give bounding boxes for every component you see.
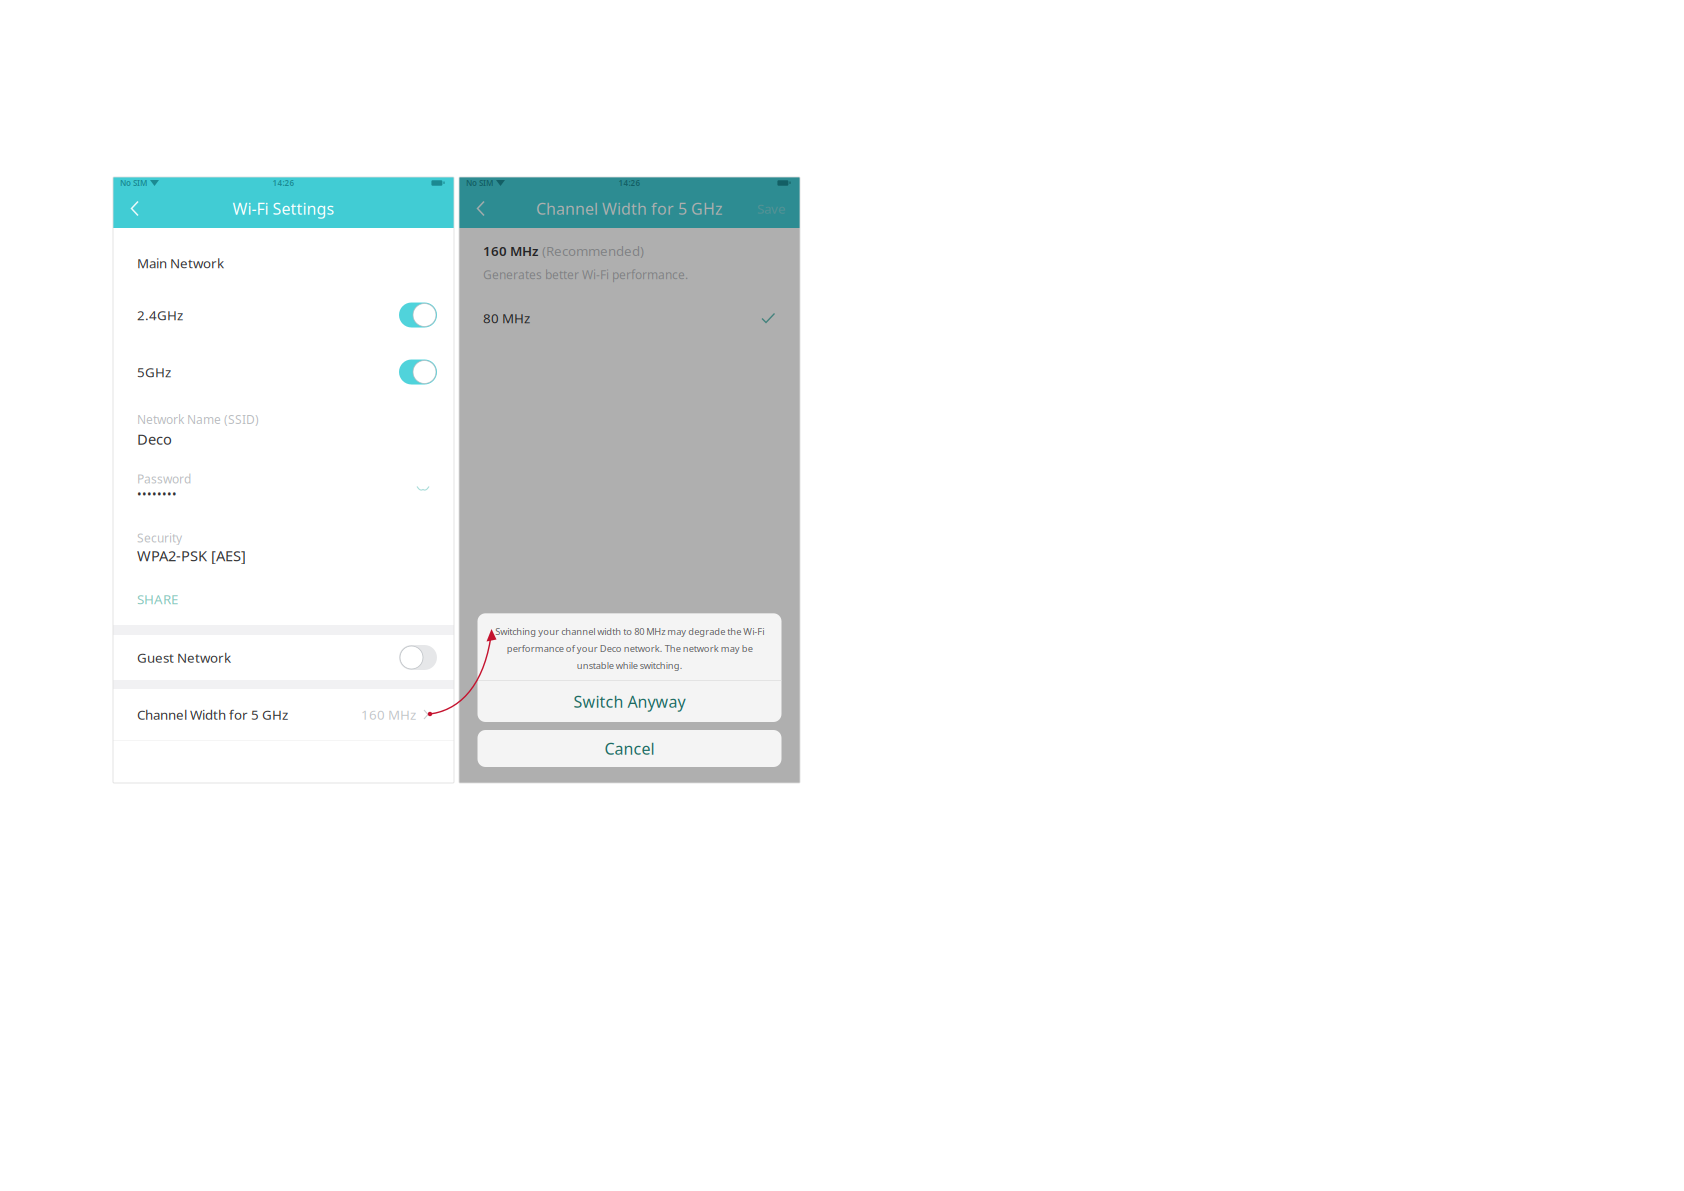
staticText: Network Name (SSID) <box>137 411 259 427</box>
staticText: Cancel <box>604 738 654 759</box>
button[interactable]: Channel Width for 5 GHz <box>113 689 454 740</box>
button[interactable]: On <box>399 302 437 327</box>
button[interactable]: Network Name (SSID) <box>113 395 454 454</box>
staticText: 14:26 <box>272 178 294 188</box>
staticText: Guest Network <box>137 649 231 666</box>
staticText: Channel Width for 5 GHz <box>536 198 723 219</box>
staticText: SHARE <box>137 590 178 608</box>
staticText: 160 MHz <box>361 706 416 723</box>
staticText: Generates better Wi-Fi performance. <box>483 267 688 283</box>
staticText: Save <box>757 200 786 217</box>
staticText: Switching your channel width to 80 MHz m… <box>495 625 764 671</box>
staticText: Password <box>137 471 191 487</box>
staticText: Main Network <box>137 254 224 272</box>
staticText: •••••••• <box>137 486 177 502</box>
staticText: Deco <box>137 429 172 449</box>
button[interactable]: Back <box>113 189 157 228</box>
button[interactable]: Cancel <box>477 730 781 767</box>
staticText: 14:26 <box>618 178 640 188</box>
button[interactable]: 160 MHz <box>459 242 800 292</box>
button[interactable]: Switch Anyway <box>477 681 781 722</box>
button[interactable]: 5GHz <box>113 349 454 395</box>
button[interactable]: Off <box>399 645 437 670</box>
button[interactable]: Password <box>113 454 454 513</box>
button[interactable]: Guest Network <box>113 635 454 680</box>
button[interactable]: 80 MHz <box>459 292 800 344</box>
button[interactable]: Security <box>113 513 454 573</box>
staticText: No SIM <box>120 178 147 188</box>
button[interactable]: 2.4GHz <box>113 281 454 349</box>
button[interactable]: SHARE <box>113 573 454 625</box>
staticText: WPA2-PSK [AES] <box>137 546 246 565</box>
staticText: 80 MHz <box>483 309 530 327</box>
staticText: Wi-Fi Settings <box>232 198 334 219</box>
button[interactable]: Save <box>743 189 800 228</box>
button[interactable]: Back <box>459 189 503 228</box>
staticText: Channel Width for 5 GHz <box>137 706 288 723</box>
staticText: Security <box>137 530 182 546</box>
staticText: 5GHz <box>137 363 171 381</box>
staticText: Switch Anyway <box>573 691 685 712</box>
staticText: 2.4GHz <box>137 306 183 324</box>
button[interactable]: On <box>399 359 437 384</box>
staticText: (Recommended) <box>542 242 644 260</box>
staticText: 160 MHz <box>483 242 538 260</box>
staticText: No SIM <box>466 178 493 188</box>
